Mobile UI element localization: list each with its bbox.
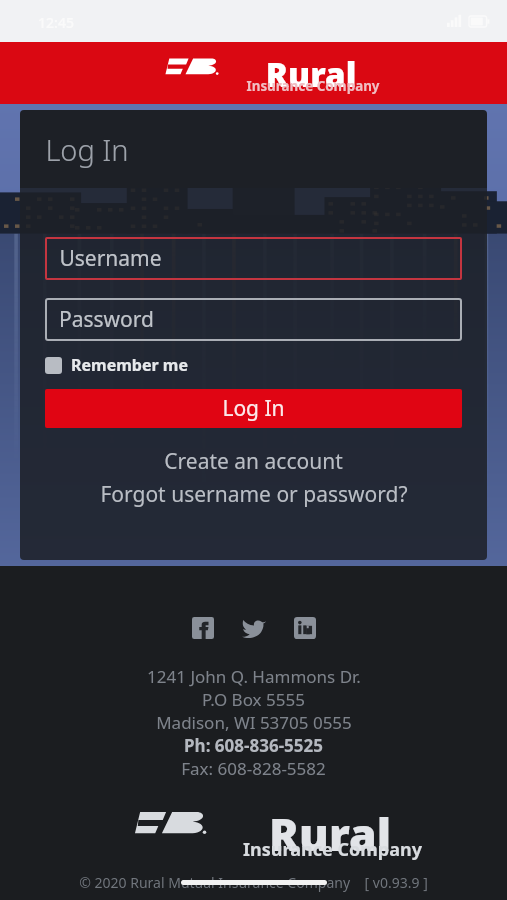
staticText: Password (59, 305, 154, 334)
button[interactable]: Twitter (232, 606, 276, 650)
staticText: © 2020 Rural Mutual Insurance Company [ … (79, 873, 428, 892)
staticText: Remember me (71, 354, 188, 376)
button[interactable]: Log In (45, 389, 462, 428)
button[interactable]: Password (45, 298, 462, 341)
staticText: Fax: 608-828-5582 (181, 757, 326, 780)
staticText: Log In (222, 394, 285, 423)
staticText: Rural Mutual (205, 803, 455, 854)
staticText: Create an account (164, 447, 343, 476)
staticText: P.O Box 5555 (202, 688, 305, 711)
staticText: Ph: 608-836-5525 (184, 734, 323, 757)
button[interactable]: Remember me (45, 354, 188, 376)
button[interactable]: Username (45, 237, 462, 280)
button[interactable]: Facebook (181, 606, 225, 650)
staticText: Log In (45, 130, 129, 169)
staticText: 1241 John Q. Hammons Dr. (147, 665, 361, 688)
staticText: Insurance Company (246, 77, 380, 95)
staticText: Username (59, 244, 162, 273)
staticText: 12:45 (38, 13, 74, 32)
staticText: Madison, WI 53705 0555 (156, 711, 352, 734)
staticText: Rural Mutual (218, 52, 404, 90)
button[interactable]: LinkedIn (283, 606, 327, 650)
button[interactable]: Create an account (45, 447, 462, 476)
staticText: Forgot username or password? (100, 480, 408, 509)
button[interactable]: Forgot username or password? (45, 480, 462, 509)
staticText: Insurance Company (243, 837, 422, 862)
